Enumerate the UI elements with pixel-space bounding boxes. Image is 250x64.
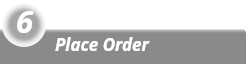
staticText: 6 [16, 0, 34, 42]
button[interactable]: Step 6 [2, 3, 46, 47]
staticText: Place Order [55, 33, 149, 56]
button[interactable]: Place Order step [0, 0, 250, 64]
